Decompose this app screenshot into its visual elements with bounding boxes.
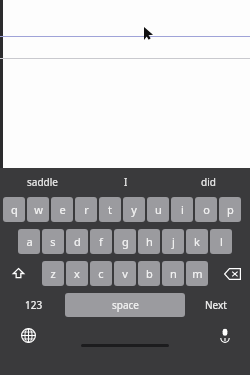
button[interactable]: h <box>138 229 160 254</box>
staticText: j <box>172 234 175 249</box>
button[interactable]: Voice input <box>214 324 236 346</box>
button[interactable]: r <box>75 197 97 222</box>
button[interactable]: c <box>90 261 112 286</box>
button[interactable]: d <box>66 229 88 254</box>
button[interactable]: m <box>186 261 208 286</box>
staticText: saddle <box>27 175 58 189</box>
staticText: s <box>50 234 56 249</box>
button[interactable]: Shift <box>3 261 33 286</box>
staticText: y <box>131 202 137 217</box>
button[interactable]: o <box>195 197 217 222</box>
button[interactable]: l <box>210 229 232 254</box>
staticText: c <box>98 266 104 281</box>
staticText: space <box>112 298 139 312</box>
staticText: v <box>122 266 128 281</box>
button[interactable]: s <box>42 229 64 254</box>
staticText: d <box>74 234 81 249</box>
staticText: did <box>201 175 216 189</box>
button[interactable]: t <box>99 197 121 222</box>
button[interactable]: did <box>167 168 250 195</box>
staticText: 123 <box>25 298 43 312</box>
staticText: f <box>99 234 103 249</box>
button[interactable]: e <box>51 197 73 222</box>
button[interactable]: saddle <box>0 168 84 195</box>
button[interactable]: Backspace <box>217 261 247 286</box>
staticText: I <box>124 175 128 189</box>
button[interactable]: Next <box>185 293 247 317</box>
staticText: g <box>122 234 129 249</box>
button[interactable]: a <box>18 229 40 254</box>
staticText: o <box>203 202 210 217</box>
staticText: a <box>26 234 33 249</box>
staticText: u <box>155 202 162 217</box>
staticText: x <box>74 266 80 281</box>
button[interactable]: q <box>3 197 25 222</box>
button[interactable]: w <box>27 197 49 222</box>
staticText: m <box>192 266 203 281</box>
button[interactable]: space <box>65 293 185 317</box>
button[interactable]: y <box>123 197 145 222</box>
staticText: b <box>146 266 153 281</box>
button[interactable]: i <box>171 197 193 222</box>
button[interactable]: x <box>66 261 88 286</box>
button[interactable]: k <box>186 229 208 254</box>
button[interactable]: n <box>162 261 184 286</box>
button[interactable]: b <box>138 261 160 286</box>
staticText: k <box>194 234 200 249</box>
button[interactable]: v <box>114 261 136 286</box>
staticText: w <box>34 202 43 217</box>
button[interactable]: g <box>114 229 136 254</box>
button[interactable]: u <box>147 197 169 222</box>
button[interactable]: Change keyboard language <box>17 324 39 346</box>
button[interactable]: p <box>219 197 241 222</box>
staticText: l <box>220 234 223 249</box>
button[interactable]: 123 <box>3 293 65 317</box>
staticText: Next <box>205 298 227 312</box>
staticText: p <box>227 202 234 217</box>
staticText: q <box>11 202 18 217</box>
staticText: z <box>50 266 56 281</box>
button[interactable]: f <box>90 229 112 254</box>
staticText: t <box>108 202 112 217</box>
staticText: i <box>181 202 184 217</box>
staticText: n <box>170 266 177 281</box>
button[interactable]: j <box>162 229 184 254</box>
staticText: e <box>59 202 66 217</box>
button[interactable]: z <box>42 261 64 286</box>
staticText: h <box>146 234 153 249</box>
staticText: r <box>84 202 89 217</box>
button[interactable]: I <box>84 168 167 195</box>
